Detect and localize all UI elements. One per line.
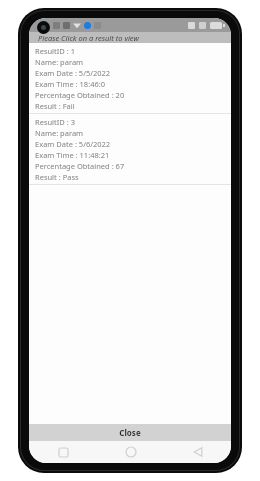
staticText: Please Click on a result to view (38, 33, 139, 43)
staticText: Close (119, 427, 141, 438)
staticText: Percentage Obtained : 67 (35, 161, 125, 171)
staticText: Exam Date : 5/5/2022 (35, 68, 111, 78)
staticText: Result : Pass (35, 172, 79, 182)
staticText: ResultID : 3 (35, 117, 75, 127)
button[interactable]: Close (29, 424, 231, 441)
staticText: Result : Fail (35, 101, 75, 111)
button[interactable]: Recent apps (29, 441, 97, 463)
button[interactable]: ResultID : 3 (29, 114, 231, 184)
staticText: Exam Date : 5/6/2022 (35, 139, 111, 149)
button[interactable]: ResultID : 1 (29, 43, 231, 113)
staticText: Exam Time : 18:46:0 (35, 79, 106, 89)
staticText: Name: param (35, 57, 84, 67)
staticText: ResultID : 1 (35, 46, 75, 56)
staticText: Name: param (35, 128, 84, 138)
button[interactable]: Home (97, 441, 164, 463)
staticText: Percentage Obtained : 20 (35, 90, 125, 100)
staticText: Exam Time : 11:48:21 (35, 150, 110, 160)
button[interactable]: Back (164, 441, 231, 463)
